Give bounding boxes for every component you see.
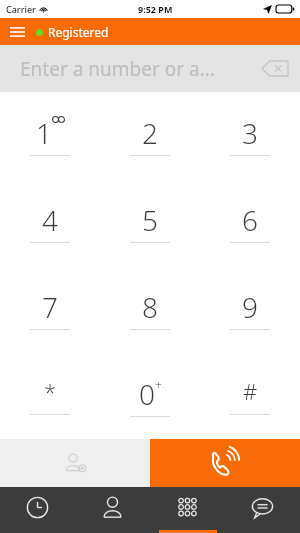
staticText: * [44, 376, 57, 406]
button[interactable]: Contacts [75, 487, 150, 533]
button[interactable]: 5 [100, 178, 200, 265]
staticText: Enter a number or a... [20, 56, 215, 82]
button[interactable]: 2 [100, 92, 200, 178]
staticText: 7 [42, 288, 58, 326]
staticText: 1 [36, 114, 52, 152]
staticText: Carrier [6, 3, 36, 15]
staticText: 5 [142, 201, 158, 239]
staticText: 2 [142, 114, 158, 152]
button[interactable]: Add contact [0, 439, 150, 487]
staticText: 9:52 PM [138, 3, 173, 15]
staticText: Registered [48, 24, 109, 40]
button[interactable]: Messages [225, 487, 300, 533]
button[interactable]: 1 [0, 92, 100, 178]
staticText: 9 [242, 288, 258, 326]
button[interactable]: 3 [200, 92, 300, 178]
button[interactable]: 6 [200, 178, 300, 265]
staticText: 0 [139, 375, 155, 413]
staticText: 6 [242, 201, 258, 239]
button[interactable]: 9 [200, 265, 300, 352]
button[interactable]: 0 [100, 352, 200, 439]
staticText: # [243, 376, 258, 406]
button[interactable]: Keypad [150, 487, 225, 533]
button[interactable]: * [0, 352, 100, 439]
button[interactable]: 4 [0, 178, 100, 265]
button[interactable]: # [200, 352, 300, 439]
button[interactable]: 7 [0, 265, 100, 352]
staticText: + [155, 377, 162, 393]
button[interactable]: Menu [0, 18, 34, 45]
staticText: 8 [142, 288, 158, 326]
button[interactable]: Recents [0, 487, 75, 533]
staticText: 4 [42, 201, 58, 239]
staticText: 3 [242, 114, 258, 152]
button[interactable]: 8 [100, 265, 200, 352]
button[interactable]: Backspace [250, 45, 300, 92]
button[interactable]: Call [150, 439, 300, 487]
